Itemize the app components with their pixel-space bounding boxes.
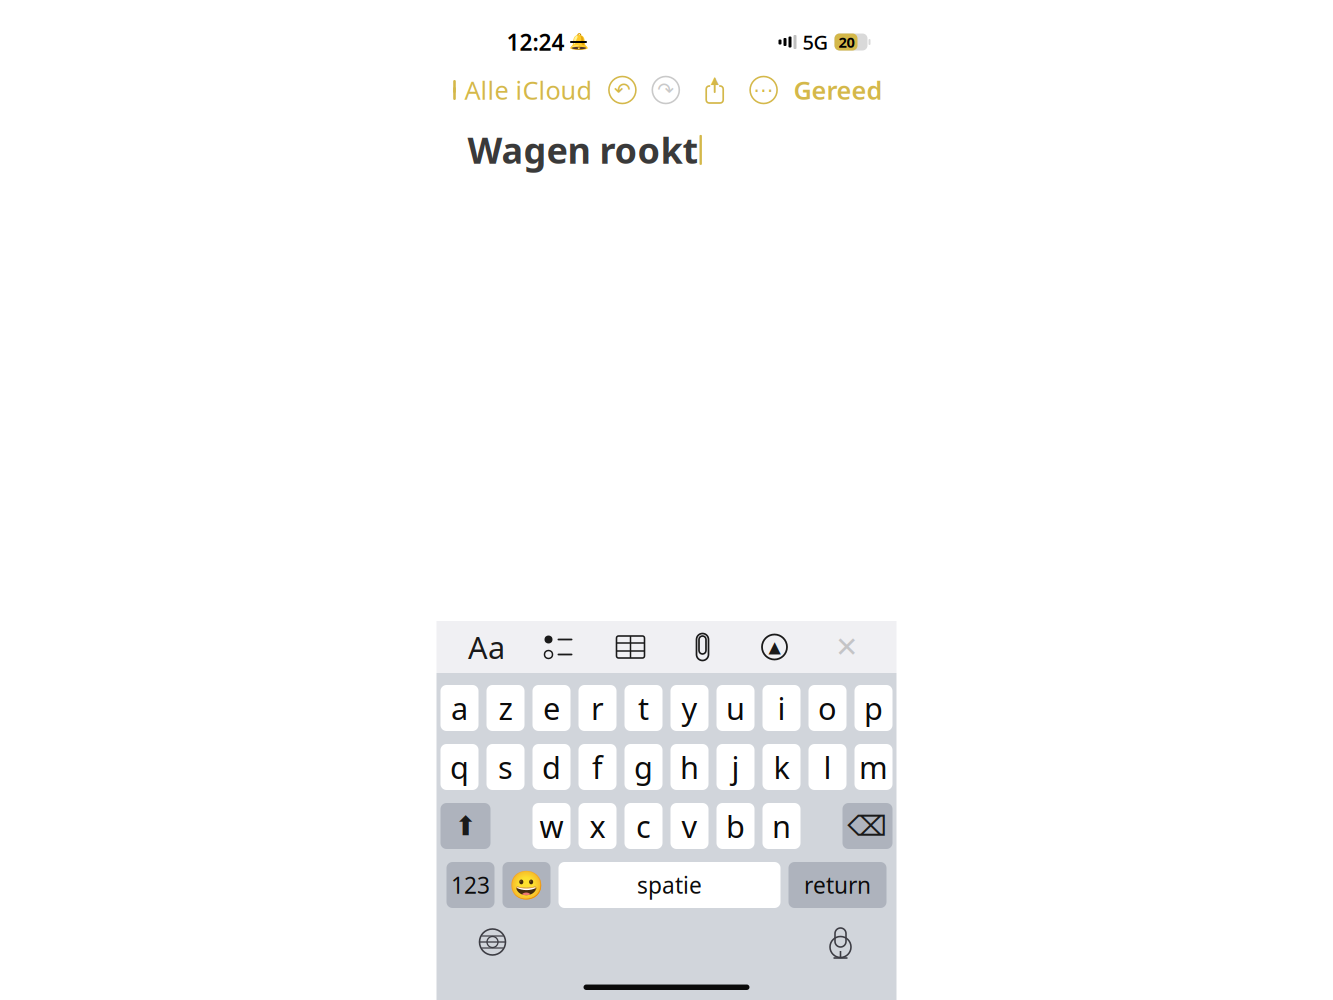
- button[interactable]: Checklist: [536, 627, 580, 667]
- staticText: q: [450, 747, 469, 787]
- staticText: z: [498, 688, 512, 728]
- staticText: u: [726, 688, 745, 728]
- button[interactable]: Switch keyboard: [436, 922, 512, 962]
- button[interactable]: Share: [696, 71, 734, 109]
- staticText: ✕: [835, 631, 858, 663]
- button[interactable]: g: [624, 744, 662, 790]
- button[interactable]: c: [624, 803, 662, 849]
- staticText: 5G: [802, 29, 828, 55]
- staticText: ↷: [657, 79, 674, 101]
- button[interactable]: e: [532, 685, 570, 731]
- staticText: v: [681, 806, 697, 846]
- staticText: a: [451, 688, 468, 728]
- button[interactable]: More: [750, 76, 777, 103]
- staticText: spatie: [637, 870, 702, 900]
- staticText: r: [591, 688, 604, 728]
- staticText: o: [818, 688, 837, 728]
- staticText: k: [773, 747, 789, 787]
- staticText: g: [634, 747, 653, 787]
- button[interactable]: o: [808, 685, 846, 731]
- button[interactable]: Undo: [609, 76, 636, 103]
- button[interactable]: y: [670, 685, 708, 731]
- button[interactable]: Emoji: [502, 862, 550, 908]
- button[interactable]: a: [440, 685, 478, 731]
- staticText: d: [542, 747, 561, 787]
- button[interactable]: Alle iCloud: [436, 65, 592, 115]
- staticText: m: [859, 747, 888, 787]
- button[interactable]: r: [578, 685, 616, 731]
- button[interactable]: Hide keyboard: [824, 627, 868, 667]
- staticText: ⋯: [754, 79, 774, 101]
- staticText: n: [772, 806, 791, 846]
- staticText: s: [498, 747, 513, 787]
- staticText: 123: [451, 870, 490, 900]
- button[interactable]: h: [670, 744, 708, 790]
- staticText: h: [680, 747, 699, 787]
- staticText: ⌫: [847, 810, 887, 842]
- button[interactable]: b: [716, 803, 754, 849]
- staticText: 12:24: [506, 27, 564, 57]
- button[interactable]: Backspace: [842, 803, 892, 849]
- button[interactable]: Attach: [680, 627, 724, 667]
- button[interactable]: Markup: [752, 627, 796, 667]
- staticText: y: [681, 688, 697, 728]
- button[interactable]: Shift: [440, 803, 490, 849]
- staticText: b: [726, 806, 745, 846]
- button[interactable]: Redo: [652, 76, 679, 103]
- button[interactable]: k: [762, 744, 800, 790]
- button[interactable]: Table: [608, 627, 652, 667]
- button[interactable]: v: [670, 803, 708, 849]
- button[interactable]: p: [854, 685, 892, 731]
- button[interactable]: s: [486, 744, 524, 790]
- staticText: e: [543, 688, 560, 728]
- staticText: ↶: [614, 79, 631, 101]
- staticText: t: [638, 688, 649, 728]
- button[interactable]: i: [762, 685, 800, 731]
- staticText: Aa: [468, 627, 505, 667]
- staticText: p: [864, 688, 883, 728]
- staticText: Alle iCloud: [464, 73, 592, 107]
- staticText: ⬆: [454, 811, 476, 841]
- staticText: 🔔: [568, 33, 588, 51]
- staticText: l: [823, 747, 831, 787]
- staticText: x: [589, 806, 605, 846]
- staticText: Wagen rookt: [467, 126, 698, 174]
- staticText: w: [539, 806, 563, 846]
- button[interactable]: Gereed: [793, 65, 896, 115]
- staticText: f: [592, 747, 603, 787]
- button[interactable]: n: [762, 803, 800, 849]
- button[interactable]: Format: [464, 627, 508, 667]
- staticText: 20: [838, 32, 854, 52]
- button[interactable]: l: [808, 744, 846, 790]
- staticText: j: [731, 747, 739, 787]
- staticText: 😀: [509, 869, 544, 901]
- button[interactable]: x: [578, 803, 616, 849]
- staticText: c: [636, 806, 651, 846]
- button[interactable]: Dictate: [820, 922, 896, 962]
- button[interactable]: w: [532, 803, 570, 849]
- staticText: return: [804, 870, 871, 900]
- button[interactable]: d: [532, 744, 570, 790]
- button[interactable]: t: [624, 685, 662, 731]
- button[interactable]: f: [578, 744, 616, 790]
- staticText: ▲: [768, 638, 780, 656]
- button[interactable]: q: [440, 744, 478, 790]
- button[interactable]: spatie: [558, 862, 780, 908]
- button[interactable]: j: [716, 744, 754, 790]
- staticText: Gereed: [793, 73, 882, 107]
- button[interactable]: 123: [446, 862, 494, 908]
- button[interactable]: return: [788, 862, 886, 908]
- button[interactable]: m: [854, 744, 892, 790]
- staticText: i: [777, 688, 785, 728]
- button[interactable]: z: [486, 685, 524, 731]
- button[interactable]: u: [716, 685, 754, 731]
- staticText: ▲: [711, 74, 719, 86]
